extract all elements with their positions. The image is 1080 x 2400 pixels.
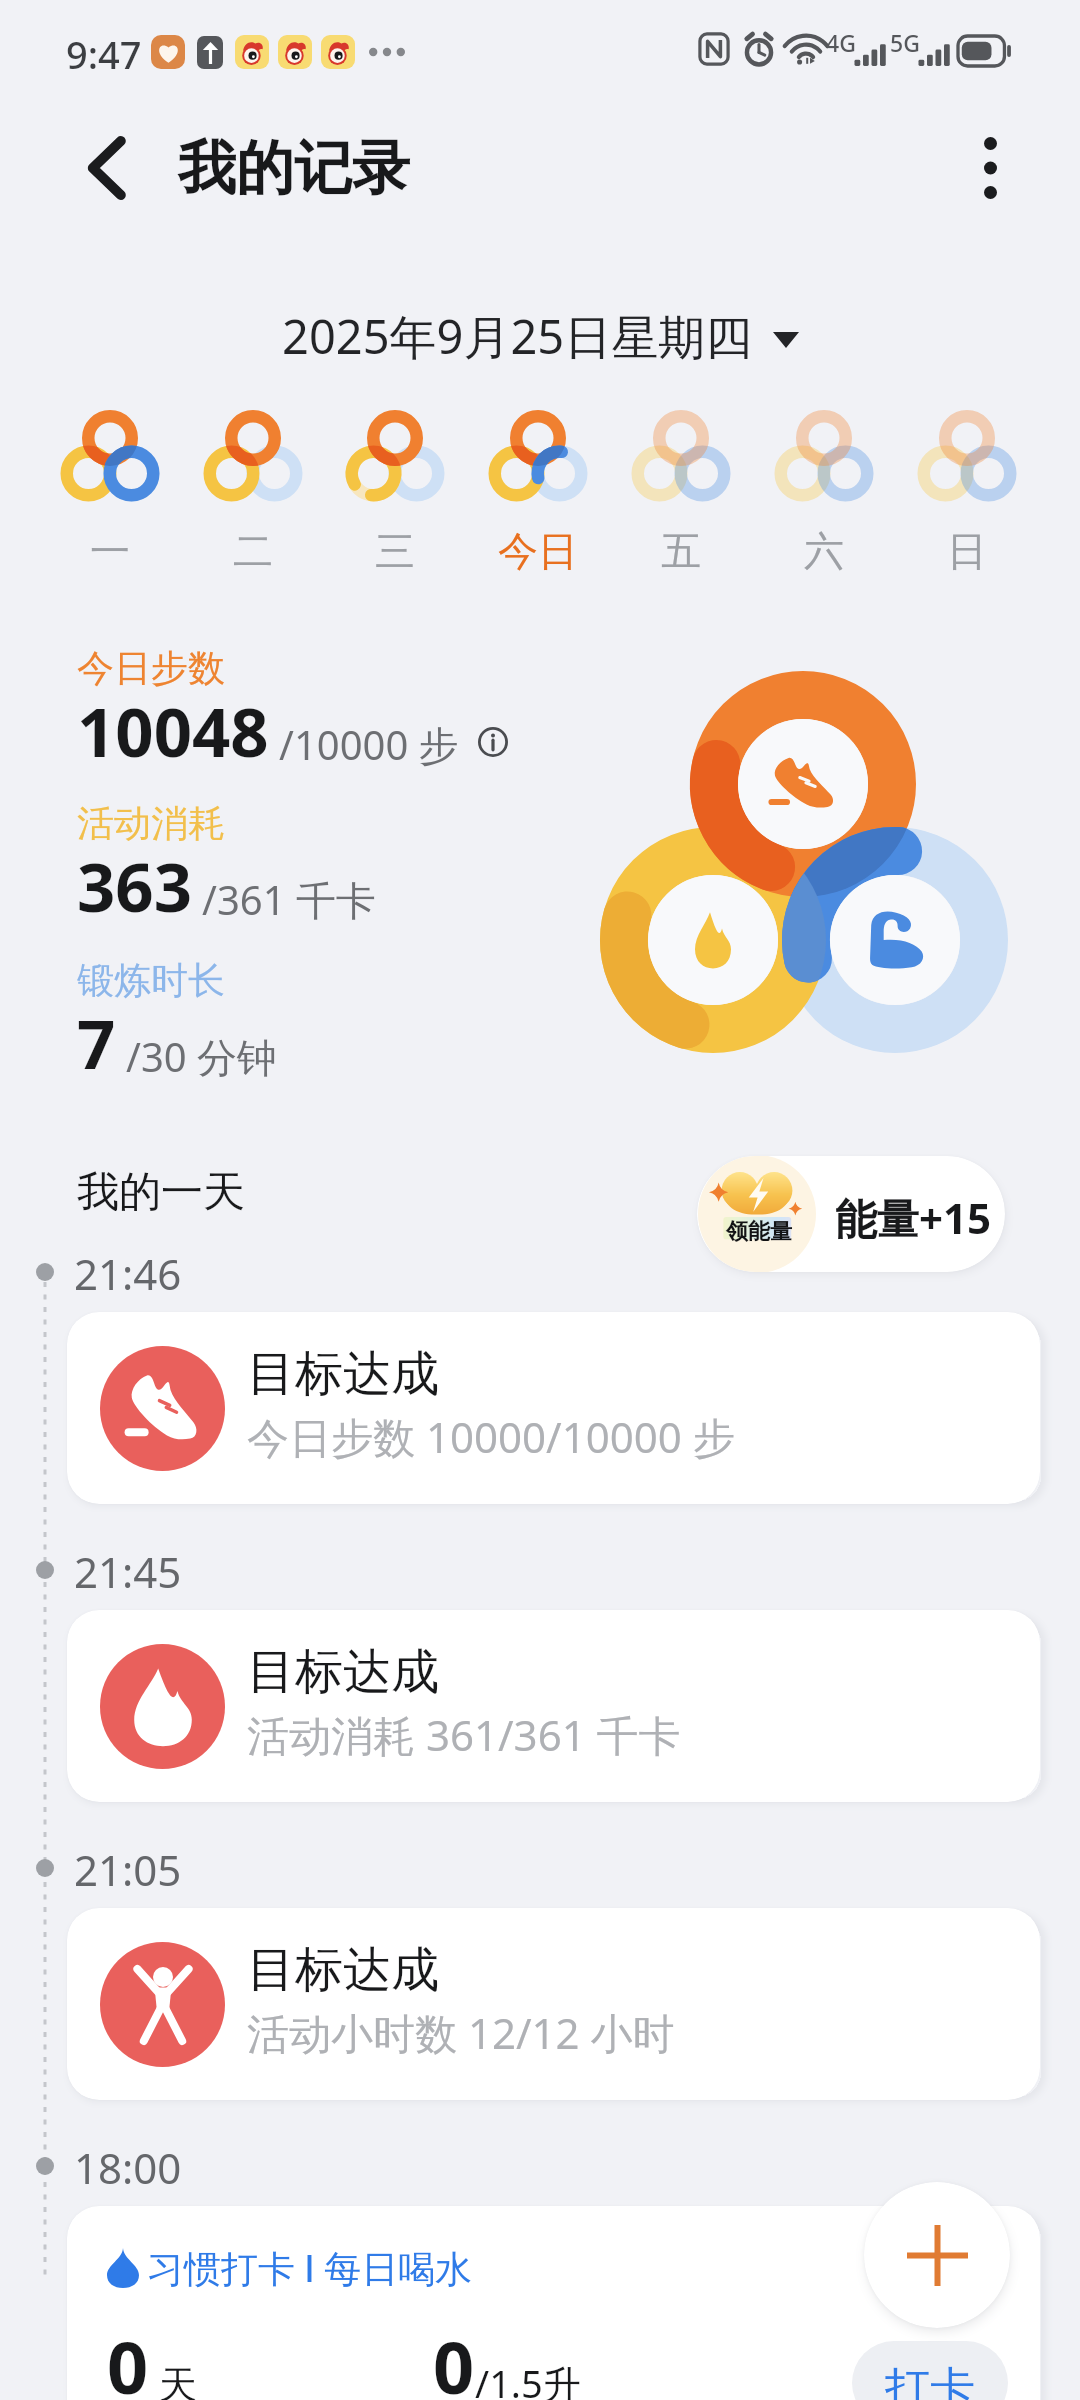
staticText: 363 [77,840,192,931]
staticText: 锻炼时长 [77,957,225,1004]
staticText: 7 [77,997,116,1088]
staticText: 0 [433,2317,475,2400]
staticText: 21:05 [74,1841,182,1898]
staticText: /10000 步 [279,717,459,772]
button[interactable]: Back [58,118,158,218]
button[interactable]: 目标达成 [67,1908,1040,2100]
button[interactable]: 2025年9月25日星期四 [270,296,811,376]
staticText: 二 [233,526,273,576]
staticText: 习惯打卡 l 每日喝水 [147,2242,473,2293]
staticText: 21:45 [74,1543,182,1600]
button[interactable]: 二 [193,404,313,580]
button[interactable]: 六 [764,404,884,580]
button[interactable]: More options [940,118,1040,218]
staticText: 活动小时数 12/12 小时 [247,2004,675,2061]
staticText: 日 [947,526,987,576]
staticText: 今日 [498,526,578,576]
staticText: 打卡 [885,2361,975,2400]
staticText: /1.5升 [475,2357,581,2400]
staticText: 10048 [77,685,269,776]
staticText: 4G [826,27,856,58]
staticText: 活动消耗 361/361 千卡 [247,1706,681,1763]
button[interactable]: 今日 [478,404,598,580]
button[interactable]: Add record [864,2182,1010,2328]
staticText: 天 [159,2361,197,2400]
button[interactable]: 习惯打卡 l 每日喝水 [67,2206,1040,2400]
button[interactable]: 一 [50,404,170,580]
staticText: 目标达成 [247,1344,439,1404]
staticText: 活动消耗 [77,800,225,847]
staticText: 18:00 [74,2139,182,2196]
staticText: 能量+15 [835,1189,992,1246]
staticText: 今日步数 [77,645,225,692]
staticText: 六 [804,526,844,576]
button[interactable]: Steps info [471,720,515,764]
staticText: 2025年9月25日星期四 [282,304,753,368]
staticText: 0 [107,2317,149,2400]
staticText: 三 [375,526,415,576]
staticText: 领能量 [726,1218,792,1246]
staticText: 目标达成 [247,1642,439,1702]
staticText: 一 [90,526,130,576]
staticText: 目标达成 [247,1940,439,2000]
button[interactable]: 三 [335,404,455,580]
staticText: 9:47 [66,28,142,80]
staticText: 五 [661,526,701,576]
staticText: /361 千卡 [202,872,376,927]
staticText: 我的一天 [77,1166,245,1219]
button[interactable]: 五 [621,404,741,580]
button[interactable]: 目标达成 [67,1312,1040,1504]
staticText: /30 分钟 [126,1029,278,1084]
button[interactable]: 领能量 [697,1156,1005,1272]
button[interactable]: 打卡 [852,2341,1008,2400]
staticText: 我的记录 [178,132,410,205]
button[interactable]: 目标达成 [67,1610,1040,1802]
staticText: 21:46 [74,1245,182,1302]
button[interactable]: 日 [907,404,1027,580]
staticText: 今日步数 10000/10000 步 [247,1408,735,1465]
staticText: 5G [890,27,920,58]
